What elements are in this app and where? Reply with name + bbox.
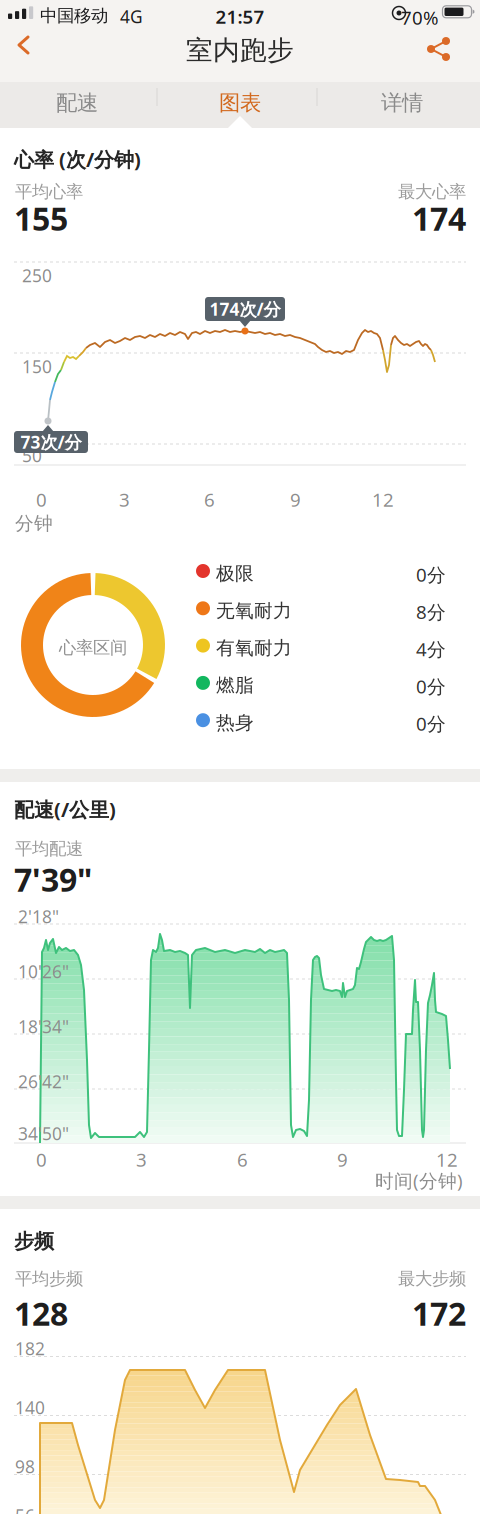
staticText: 21:57 bbox=[215, 4, 264, 29]
staticText: 0分 bbox=[416, 674, 446, 699]
staticText: 平均步频 bbox=[15, 1268, 83, 1289]
staticText: 4分 bbox=[416, 637, 446, 661]
staticText: 6 bbox=[237, 1147, 248, 1172]
staticText: 分钟 bbox=[15, 512, 53, 535]
staticText: 50 bbox=[22, 444, 42, 467]
staticText: 燃脂 bbox=[216, 674, 254, 697]
staticText: 配速 bbox=[56, 90, 98, 116]
button[interactable]: Share bbox=[0, 0, 480, 70]
staticText: 8分 bbox=[416, 599, 446, 624]
staticText: 3 bbox=[136, 1147, 147, 1172]
button[interactable]: 详情 bbox=[327, 83, 477, 123]
staticText: 56 bbox=[15, 1504, 35, 1514]
staticText: 0 bbox=[36, 487, 47, 512]
staticText: 时间(分钟) bbox=[375, 1168, 463, 1193]
staticText: 9 bbox=[290, 487, 301, 512]
staticText: 12 bbox=[436, 1147, 458, 1172]
staticText: 心率 (次/分钟) bbox=[14, 146, 141, 173]
button[interactable]: Back bbox=[0, 0, 44, 44]
staticText: 4G bbox=[120, 5, 143, 28]
staticText: 详情 bbox=[381, 90, 423, 116]
staticText: 0 bbox=[36, 1147, 47, 1172]
staticText: 6 bbox=[204, 487, 215, 512]
staticText: 最大步频 bbox=[398, 1268, 466, 1289]
staticText: 热身 bbox=[216, 711, 254, 734]
staticText: 配速(/公里) bbox=[14, 796, 116, 823]
staticText: 12 bbox=[372, 487, 394, 512]
staticText: 有氧耐力 bbox=[216, 637, 292, 659]
staticText: 73次/分 bbox=[20, 430, 81, 453]
staticText: 98 bbox=[15, 1455, 35, 1478]
staticText: 250 bbox=[22, 264, 52, 287]
staticText: 最大心率 bbox=[398, 181, 466, 202]
staticText: 140 bbox=[15, 1396, 45, 1419]
staticText: 图表 bbox=[219, 90, 261, 116]
staticText: 155 bbox=[14, 197, 68, 239]
button[interactable]: 图表 bbox=[165, 83, 315, 123]
staticText: 9 bbox=[337, 1147, 348, 1172]
staticText: 128 bbox=[14, 1292, 68, 1334]
staticText: 中国移动 bbox=[40, 5, 108, 26]
staticText: 7'39" bbox=[14, 858, 92, 900]
staticText: 0分 bbox=[416, 562, 446, 587]
staticText: 10'26" bbox=[18, 960, 69, 983]
staticText: 26'42" bbox=[18, 1070, 69, 1093]
staticText: 34'50" bbox=[18, 1122, 69, 1145]
staticText: 174 bbox=[412, 197, 466, 239]
staticText: 无氧耐力 bbox=[216, 599, 292, 622]
staticText: 174次/分 bbox=[209, 297, 280, 320]
staticText: 平均配速 bbox=[15, 838, 83, 859]
staticText: 平均心率 bbox=[15, 181, 83, 202]
staticText: 极限 bbox=[216, 562, 254, 585]
staticText: 步频 bbox=[14, 1229, 54, 1254]
staticText: 18'34" bbox=[18, 1015, 69, 1038]
staticText: 0分 bbox=[416, 711, 446, 736]
staticText: 172 bbox=[412, 1292, 466, 1334]
staticText: 室内跑步 bbox=[186, 34, 294, 67]
staticText: 3 bbox=[119, 487, 130, 512]
staticText: 150 bbox=[22, 355, 52, 378]
staticText: 70% bbox=[401, 5, 439, 30]
staticText: 心率区间 bbox=[59, 637, 127, 658]
staticText: 182 bbox=[15, 1337, 45, 1360]
staticText: 2'18" bbox=[18, 905, 59, 928]
button[interactable]: 配速 bbox=[2, 83, 152, 123]
